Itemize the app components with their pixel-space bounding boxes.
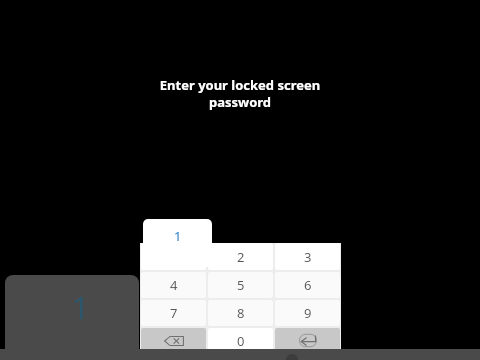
staticText: 2 [237, 248, 245, 266]
button[interactable]: Enter [275, 328, 340, 353]
staticText: 1 [72, 287, 90, 328]
button[interactable]: 7 [141, 300, 206, 326]
staticText: 4 [170, 276, 178, 294]
button[interactable]: 3 [275, 243, 340, 270]
button[interactable]: Backspace [141, 328, 206, 353]
staticText: 7 [170, 304, 178, 322]
staticText: Enter your locked screen password [120, 76, 360, 111]
button[interactable]: 1 [5, 275, 139, 351]
button[interactable]: 6 [275, 272, 340, 298]
button[interactable]: 2 [208, 243, 273, 270]
staticText: 5 [237, 276, 245, 294]
button[interactable]: 5 [208, 272, 273, 298]
staticText: 0 [237, 332, 245, 350]
button[interactable]: 4 [141, 272, 206, 298]
staticText: 6 [304, 276, 312, 294]
staticText: 1 [174, 227, 182, 245]
staticText: 9 [304, 304, 312, 322]
button[interactable]: 9 [275, 300, 340, 326]
button[interactable]: 0 [208, 328, 273, 354]
staticText: 3 [304, 248, 312, 266]
staticText: 8 [237, 304, 245, 322]
button[interactable]: 8 [208, 300, 273, 326]
